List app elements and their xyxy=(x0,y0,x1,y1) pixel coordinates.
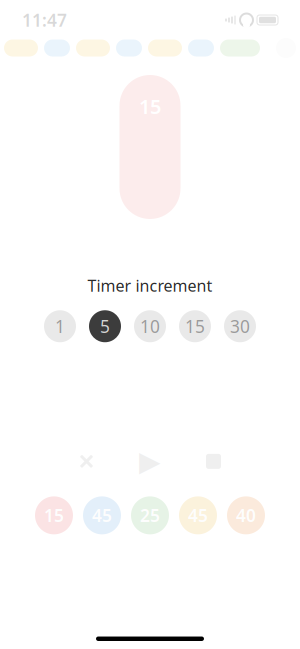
staticText: 15 xyxy=(44,504,64,527)
staticText: 5 xyxy=(100,315,110,338)
staticText: 15 xyxy=(185,315,205,338)
staticText: 30 xyxy=(230,315,250,338)
button[interactable]: 15 xyxy=(179,310,211,342)
staticText: Timer increment xyxy=(87,275,212,296)
button[interactable]: 1 xyxy=(44,310,76,342)
staticText: 45 xyxy=(92,504,112,527)
staticText: 45 xyxy=(188,504,208,527)
button[interactable]: 30 xyxy=(224,310,256,342)
staticText: 10 xyxy=(140,315,160,338)
staticText: ▶ xyxy=(139,445,161,477)
staticText: 1 xyxy=(55,315,65,338)
button[interactable]: Stop xyxy=(196,444,230,478)
button[interactable]: 10 xyxy=(134,310,166,342)
button[interactable]: Cancel xyxy=(69,444,103,478)
button[interactable]: Play xyxy=(133,444,167,478)
staticText: 25 xyxy=(140,504,160,527)
button[interactable]: 5 xyxy=(89,310,121,342)
staticText: 11:47 xyxy=(22,8,67,31)
staticText: 15 xyxy=(139,93,161,120)
staticText: 40 xyxy=(236,504,256,527)
